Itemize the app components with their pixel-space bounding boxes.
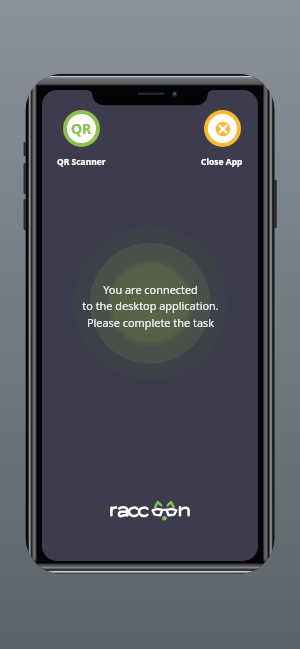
staticText: QR Scanner <box>57 156 106 168</box>
staticText: You are connected to the desktop applica… <box>82 282 219 331</box>
button[interactable]: Close App <box>188 110 256 172</box>
staticText: QR <box>71 119 92 138</box>
staticText: Close App <box>201 156 243 168</box>
button[interactable]: QR <box>47 110 115 172</box>
button[interactable]: raccoon <box>110 498 192 524</box>
